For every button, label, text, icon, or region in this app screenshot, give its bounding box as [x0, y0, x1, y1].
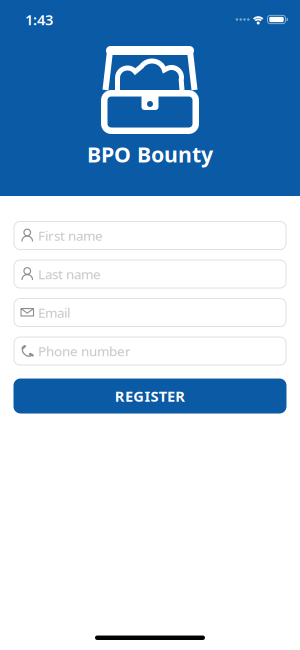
button[interactable]: Phone number	[13, 336, 286, 365]
staticText: Phone number	[38, 342, 131, 360]
button[interactable]: Last name	[13, 259, 286, 288]
button[interactable]: First name	[13, 221, 286, 250]
button[interactable]: Email	[13, 298, 286, 327]
staticText: Email	[38, 304, 70, 321]
staticText: 1:43	[25, 10, 53, 29]
staticText: REGISTER	[115, 386, 185, 406]
staticText: First name	[38, 227, 103, 244]
staticText: BPO Bounty	[87, 140, 213, 168]
button[interactable]: REGISTER	[13, 378, 286, 413]
staticText: Last name	[38, 265, 101, 283]
